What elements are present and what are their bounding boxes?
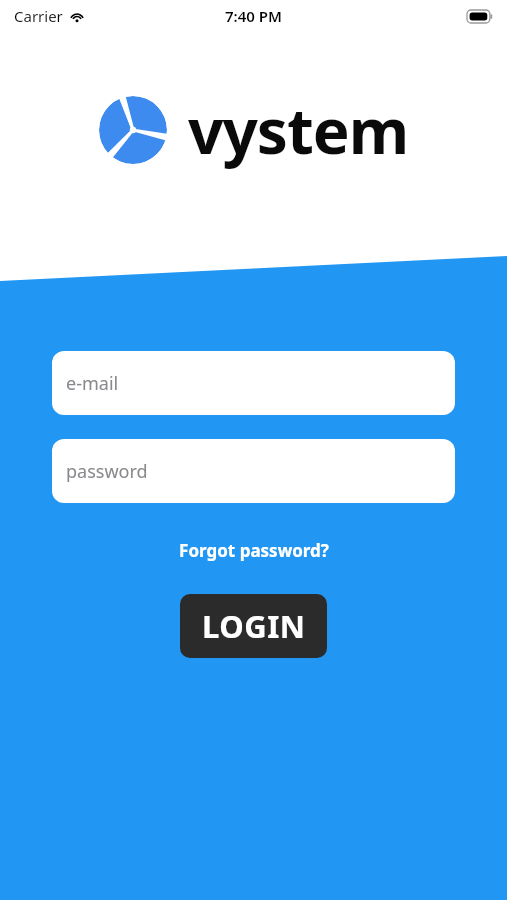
button[interactable]: e-mail bbox=[52, 351, 455, 415]
staticText: password bbox=[66, 459, 148, 484]
staticText: e-mail bbox=[66, 371, 119, 396]
staticText: Forgot password? bbox=[179, 539, 329, 562]
staticText: 7:40 PM bbox=[225, 6, 282, 26]
button[interactable]: password bbox=[52, 439, 455, 503]
button[interactable]: LOGIN bbox=[180, 594, 327, 658]
button[interactable]: Forgot password? bbox=[52, 533, 455, 568]
staticText: LOGIN bbox=[202, 605, 306, 647]
other: vystem logo bbox=[99, 96, 167, 164]
staticText: Carrier bbox=[14, 6, 63, 26]
staticText: vystem bbox=[188, 88, 409, 172]
